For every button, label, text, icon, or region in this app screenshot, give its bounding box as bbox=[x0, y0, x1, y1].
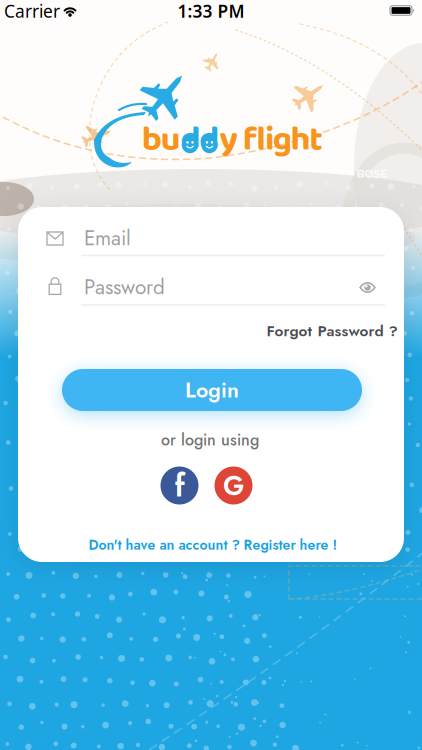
button[interactable]: Login with Google bbox=[214, 466, 252, 505]
staticText: Carrier bbox=[4, 0, 60, 22]
button[interactable]: Password bbox=[41, 269, 387, 313]
staticText: 1:33 PM bbox=[177, 0, 244, 22]
staticText: f bbox=[174, 462, 184, 509]
staticText: Email bbox=[84, 223, 131, 253]
staticText: Don't have an account ? Register here ! bbox=[88, 535, 337, 555]
button[interactable]: Login bbox=[62, 369, 362, 411]
staticText: BOSE bbox=[356, 167, 387, 180]
staticText: G bbox=[223, 466, 244, 505]
button[interactable]: Forgot Password ? bbox=[266, 320, 397, 342]
staticText: Password bbox=[84, 272, 165, 302]
staticText: dd bbox=[180, 112, 219, 168]
button[interactable]: Email bbox=[41, 220, 387, 264]
button[interactable]: Login with Facebook bbox=[160, 462, 198, 509]
staticText: or login using bbox=[161, 428, 259, 451]
staticText: y flight bbox=[219, 112, 323, 168]
staticText: Forgot Password ? bbox=[266, 320, 397, 342]
button[interactable]: Show password bbox=[355, 277, 379, 297]
staticText: bu bbox=[142, 112, 180, 168]
button[interactable]: Don't have an account ? Register here ! bbox=[88, 535, 337, 555]
staticText: Login bbox=[185, 375, 239, 405]
